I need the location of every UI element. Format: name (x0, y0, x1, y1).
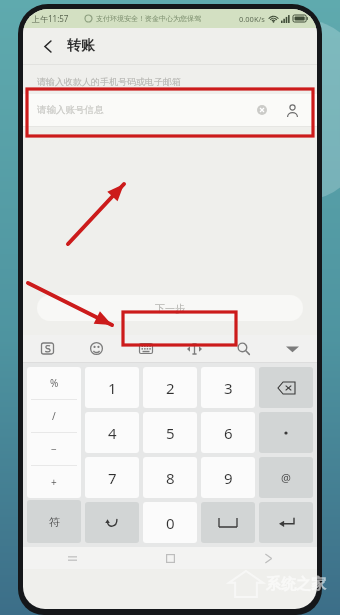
staticText: 8 (166, 468, 175, 488)
button[interactable]: 下一步 (37, 295, 303, 321)
button[interactable]: 7 (85, 457, 139, 498)
button[interactable]: 5 (143, 412, 197, 453)
staticText: 系统之家 (266, 575, 326, 594)
staticText: 7 (108, 468, 117, 488)
button[interactable]: 最近任务 (23, 547, 121, 569)
button[interactable]: 清除 (253, 101, 271, 119)
button[interactable]: 输入法 (23, 335, 72, 362)
staticText: 请输入收款人的手机号码或电子邮箱 (37, 76, 181, 87)
button[interactable]: ↩ (85, 502, 139, 543)
staticText: 5 (166, 423, 175, 443)
button[interactable]: 返回 (35, 33, 61, 59)
button[interactable]: . (259, 412, 313, 453)
button[interactable]: / (27, 400, 81, 432)
staticText: 请输入账号信息 (37, 104, 104, 116)
button[interactable]: − (27, 433, 81, 465)
staticText: 符 (49, 515, 60, 529)
button[interactable]: 请输入账号信息 (23, 94, 317, 126)
button[interactable]: 1 (85, 367, 139, 408)
button[interactable]: 搜索 (219, 335, 268, 362)
staticText: / (52, 409, 56, 423)
staticText: 下一步 (155, 302, 185, 315)
staticText: % (50, 376, 59, 390)
button[interactable]: 0 (143, 502, 197, 543)
button[interactable]: 4 (85, 412, 139, 453)
staticText: 6 (224, 423, 233, 443)
button[interactable]: ␣ (201, 502, 255, 543)
staticText: 2 (166, 378, 175, 398)
button[interactable]: + (27, 466, 81, 498)
staticText: 3 (224, 378, 233, 398)
button[interactable]: 6 (201, 412, 255, 453)
staticText: 0 (166, 513, 175, 533)
staticText: @ (281, 470, 291, 485)
button[interactable]: 9 (201, 457, 255, 498)
staticText: 4 (108, 423, 117, 443)
button[interactable]: 符 (27, 500, 81, 543)
button[interactable]: 返回 (219, 547, 317, 569)
staticText: − (51, 442, 57, 456)
button[interactable]: 表情 (72, 335, 121, 362)
staticText: 0.00K/s (239, 14, 265, 24)
button[interactable]: 键盘 (121, 335, 170, 362)
staticText: 1 (108, 378, 117, 398)
staticText: + (51, 475, 57, 489)
staticText: 转账 (67, 37, 95, 55)
staticText: 支付环境安全！资金中心为您保驾 (96, 14, 201, 23)
button[interactable]: % (27, 367, 81, 399)
staticText: 9 (224, 468, 233, 488)
button[interactable]: 8 (143, 457, 197, 498)
button[interactable]: ↵ (259, 502, 313, 543)
button[interactable]: 2 (143, 367, 197, 408)
button[interactable]: 3 (201, 367, 255, 408)
button[interactable]: 收起 (268, 335, 317, 362)
staticText: 上午11:57 (32, 13, 69, 24)
button[interactable]: 光标 (170, 335, 219, 362)
button[interactable]: @ (259, 457, 313, 498)
button[interactable]: 选择联系人 (281, 99, 303, 121)
button[interactable]: 主页 (121, 547, 219, 569)
button[interactable]: ⌫ (259, 367, 313, 408)
